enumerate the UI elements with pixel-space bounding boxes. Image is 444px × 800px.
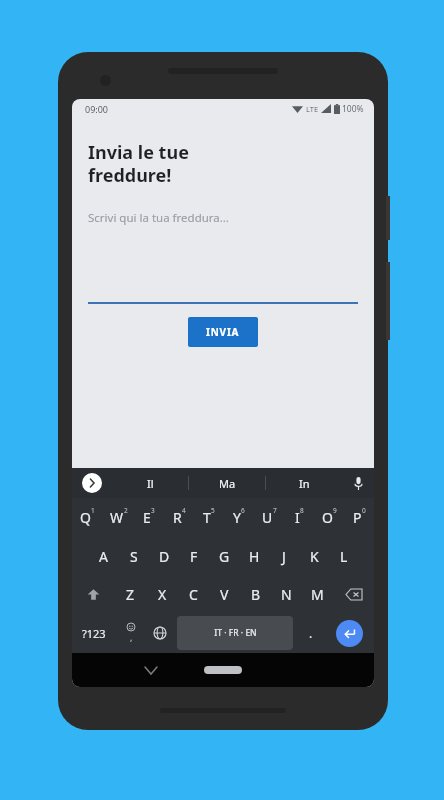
button[interactable]: A bbox=[88, 537, 119, 575]
button[interactable]: T bbox=[194, 498, 224, 537]
staticText: 09:00 bbox=[85, 103, 109, 115]
staticText: A bbox=[99, 547, 108, 566]
staticText: Scrivi qui la tua freddura… bbox=[88, 210, 229, 226]
staticText: H bbox=[249, 547, 260, 566]
button[interactable]: R bbox=[164, 498, 194, 537]
staticText: L bbox=[340, 547, 348, 566]
staticText: X bbox=[158, 585, 167, 604]
staticText: 6 bbox=[241, 506, 245, 515]
button[interactable]: F bbox=[179, 537, 209, 575]
staticText: S bbox=[130, 547, 138, 566]
staticText: 1 bbox=[91, 506, 95, 515]
staticText: ?123 bbox=[82, 626, 106, 641]
staticText: T bbox=[203, 508, 211, 527]
button[interactable]: Emoji and comma bbox=[116, 613, 145, 653]
button[interactable]: Change language bbox=[145, 613, 174, 653]
staticText: 4 bbox=[182, 506, 186, 515]
staticText: E bbox=[143, 508, 151, 527]
button[interactable]: K bbox=[299, 537, 329, 575]
staticText: R bbox=[173, 508, 182, 527]
staticText: Q bbox=[80, 508, 91, 527]
staticText: 5 bbox=[211, 506, 215, 515]
button[interactable]: O bbox=[314, 498, 344, 537]
staticText: IT · FR · EN bbox=[214, 627, 257, 639]
button[interactable]: Hide keyboard bbox=[138, 657, 164, 683]
staticText: 100% bbox=[342, 103, 364, 115]
button[interactable]: Q bbox=[72, 498, 103, 537]
button[interactable]: Il bbox=[112, 468, 188, 498]
button[interactable]: Shift bbox=[72, 575, 114, 613]
button[interactable]: I bbox=[284, 498, 314, 537]
button[interactable]: IT · FR · EN bbox=[177, 616, 293, 650]
button[interactable]: B bbox=[240, 575, 271, 613]
staticText: 3 bbox=[151, 506, 155, 515]
button[interactable]: L bbox=[329, 537, 359, 575]
staticText: Z bbox=[126, 585, 135, 604]
staticText: B bbox=[251, 585, 261, 604]
staticText: Ma bbox=[219, 476, 236, 491]
button[interactable]: X bbox=[146, 575, 178, 613]
button[interactable]: S bbox=[119, 537, 149, 575]
button[interactable]: INVIA bbox=[188, 317, 258, 347]
staticText: G bbox=[219, 547, 230, 566]
button[interactable]: V bbox=[209, 575, 240, 613]
button[interactable]: U bbox=[254, 498, 284, 537]
button[interactable]: . bbox=[296, 613, 325, 653]
staticText: 8 bbox=[300, 506, 304, 515]
button[interactable]: E bbox=[134, 498, 164, 537]
button[interactable]: J bbox=[269, 537, 299, 575]
button[interactable]: N bbox=[271, 575, 302, 613]
staticText: U bbox=[262, 508, 273, 527]
button[interactable]: P bbox=[344, 498, 374, 537]
staticText: 2 bbox=[124, 506, 128, 515]
staticText: In bbox=[299, 476, 310, 491]
staticText: 7 bbox=[273, 506, 277, 515]
button[interactable]: In bbox=[266, 468, 342, 498]
staticText: D bbox=[159, 547, 170, 566]
staticText: 9 bbox=[333, 506, 337, 515]
button[interactable]: Home bbox=[204, 666, 242, 674]
staticText: I bbox=[295, 508, 300, 527]
staticText: O bbox=[322, 508, 333, 527]
button[interactable]: Expand suggestions bbox=[72, 468, 112, 498]
staticText: Il bbox=[147, 476, 154, 491]
button[interactable]: Backspace bbox=[333, 575, 374, 613]
staticText: N bbox=[281, 585, 292, 604]
button[interactable]: Z bbox=[114, 575, 146, 613]
staticText: INVIA bbox=[206, 325, 240, 339]
button[interactable]: ?123 bbox=[72, 613, 116, 653]
button[interactable]: C bbox=[178, 575, 209, 613]
staticText: W bbox=[110, 508, 124, 527]
staticText: P bbox=[353, 508, 362, 527]
staticText: K bbox=[310, 547, 319, 566]
staticText: C bbox=[189, 585, 198, 604]
button[interactable]: W bbox=[103, 498, 134, 537]
button[interactable]: Ma bbox=[189, 468, 265, 498]
button[interactable]: M bbox=[302, 575, 333, 613]
button[interactable]: Y bbox=[224, 498, 254, 537]
staticText: , bbox=[130, 631, 133, 643]
staticText: F bbox=[190, 547, 198, 566]
staticText: 0 bbox=[362, 506, 366, 515]
staticText: M bbox=[311, 585, 324, 604]
button[interactable]: D bbox=[149, 537, 179, 575]
button[interactable]: Voice input bbox=[342, 468, 374, 498]
staticText: Y bbox=[233, 508, 241, 527]
button[interactable]: Enter bbox=[325, 613, 374, 653]
staticText: . bbox=[309, 625, 313, 641]
button[interactable]: G bbox=[209, 537, 239, 575]
button[interactable]: H bbox=[239, 537, 269, 575]
button[interactable]: Scrivi qui la tua freddura… bbox=[88, 210, 358, 304]
staticText: V bbox=[220, 585, 229, 604]
staticText: Invia le tue freddure! bbox=[88, 140, 189, 187]
staticText: J bbox=[282, 547, 286, 566]
staticText: LTE bbox=[306, 104, 319, 114]
